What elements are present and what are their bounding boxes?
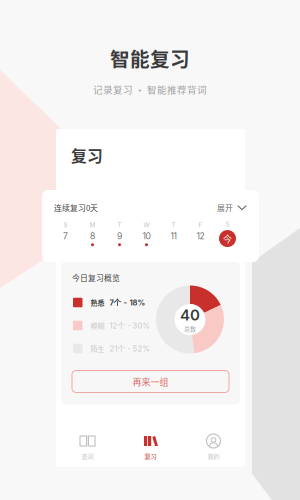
staticText: S (225, 220, 229, 228)
staticText: 记录复习 • 智能推荐背词 (93, 82, 207, 96)
staticText: 7 (63, 231, 68, 241)
button[interactable]: 展开 (217, 202, 247, 213)
staticText: 复习 (144, 451, 156, 460)
staticText: 7个 - 18% (109, 298, 145, 307)
staticText: 今 (223, 232, 232, 245)
button[interactable]: 我的 (182, 433, 245, 460)
staticText: 12个 - 30% (109, 321, 149, 330)
staticText: 21个 - 52% (109, 344, 149, 353)
staticText: 40 (180, 306, 200, 324)
staticText: 8 (90, 231, 95, 241)
staticText: 熟悉 (90, 297, 104, 307)
staticText: T (171, 221, 175, 229)
staticText: 9 (117, 231, 122, 241)
staticText: 我的 (207, 451, 219, 460)
staticText: 10 (142, 231, 150, 241)
staticText: 11 (170, 231, 176, 241)
staticText: 复习 (71, 144, 103, 166)
staticText: 模糊 (90, 320, 104, 330)
staticText: T (117, 221, 121, 229)
staticText: 再来一组 (132, 375, 168, 388)
staticText: W (143, 221, 149, 229)
staticText: 总数 (184, 324, 196, 333)
staticText: M (89, 221, 95, 229)
staticText: F (198, 221, 202, 229)
staticText: 展开 (217, 202, 233, 213)
staticText: 查词 (81, 451, 93, 460)
staticText: 智能复习 (110, 44, 190, 72)
button[interactable]: 复习 (119, 433, 182, 460)
staticText: S (63, 221, 67, 229)
button[interactable]: 查词 (56, 433, 119, 460)
button[interactable]: 再来一组 (72, 370, 229, 392)
staticText: 陌生 (90, 343, 104, 353)
staticText: 连续复习0天 (54, 202, 98, 213)
staticText: 12 (196, 231, 204, 241)
staticText: 今日复习概览 (72, 272, 120, 283)
